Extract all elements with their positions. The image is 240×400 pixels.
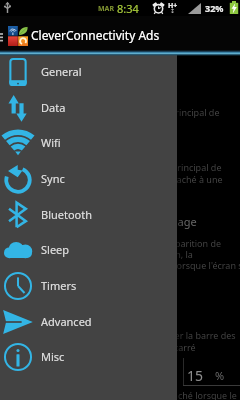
staticText: General	[41, 64, 82, 79]
staticText: Bluetooth	[41, 207, 93, 222]
button[interactable]: Wifi	[0, 125, 177, 161]
staticText: Data	[41, 100, 66, 115]
button[interactable]: Sleep	[0, 232, 177, 268]
button[interactable]: Bluetooth	[0, 197, 177, 233]
staticText: Affichage	[148, 214, 197, 229]
button[interactable]: Open navigation drawer	[0, 25, 3, 41]
staticText: Activer le service principal de	[97, 106, 220, 118]
staticText: Advanced	[41, 314, 92, 329]
button[interactable]: Sync	[0, 161, 177, 197]
button[interactable]: Advanced	[0, 304, 177, 340]
staticText: Activer le service principal de	[99, 161, 222, 173]
staticText: l'application, la	[130, 248, 193, 260]
staticText: notification lorsque l'écran s'allume	[124, 259, 240, 271]
staticText: l'application attaché à une	[112, 173, 223, 185]
staticText: ↕	[170, 7, 176, 14]
button[interactable]: General	[0, 54, 177, 90]
staticText: Wifi	[41, 135, 61, 150]
staticText: Sync	[41, 171, 65, 186]
staticText: Sleep	[41, 242, 70, 257]
staticText: %	[215, 368, 225, 383]
staticText: tâches carré	[144, 341, 196, 353]
staticText: Déclenché lorsque le niveau	[149, 389, 240, 400]
button[interactable]: Misc	[0, 339, 177, 375]
button[interactable]: Data	[0, 90, 177, 126]
staticText: 8:34	[117, 1, 139, 16]
staticText: Timers	[41, 278, 77, 293]
staticText: Misc	[41, 349, 65, 364]
staticText: Activer l'apparition de	[129, 237, 222, 249]
button[interactable]: Timers	[0, 268, 177, 304]
staticText: Masquer la barre des	[146, 329, 236, 341]
staticText: MAR	[98, 4, 115, 14]
staticText: CleverConnectivity Ads	[31, 27, 160, 43]
staticText: 32%	[205, 2, 224, 14]
staticText: 15	[187, 366, 204, 385]
staticText: H+	[168, 1, 178, 11]
